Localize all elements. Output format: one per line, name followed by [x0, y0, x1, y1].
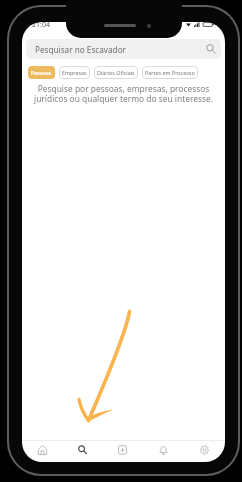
button[interactable]: Pessoas — [28, 66, 55, 79]
button[interactable]: Diários Oficiais — [94, 66, 138, 79]
button[interactable]: Empresas — [59, 66, 90, 79]
button[interactable]: Partes em Processo — [142, 66, 198, 79]
staticText: Partes em Processo — [145, 69, 195, 76]
button[interactable]: Search — [62, 439, 102, 461]
button[interactable]: Pesquisar no Escavador — [26, 39, 221, 59]
button[interactable]: Notifications — [143, 439, 184, 461]
staticText: Pessoas — [31, 69, 52, 76]
staticText: 21:04 — [32, 22, 50, 30]
button[interactable]: Add — [102, 439, 143, 461]
staticText: Empresas — [62, 69, 87, 76]
button[interactable]: Home — [22, 439, 62, 461]
button[interactable]: Settings — [184, 439, 225, 461]
staticText: Pesquise por pessoas, empresas, processo… — [28, 83, 219, 104]
staticText: Diários Oficiais — [97, 69, 135, 76]
staticText: Pesquisar no Escavador — [35, 44, 126, 55]
